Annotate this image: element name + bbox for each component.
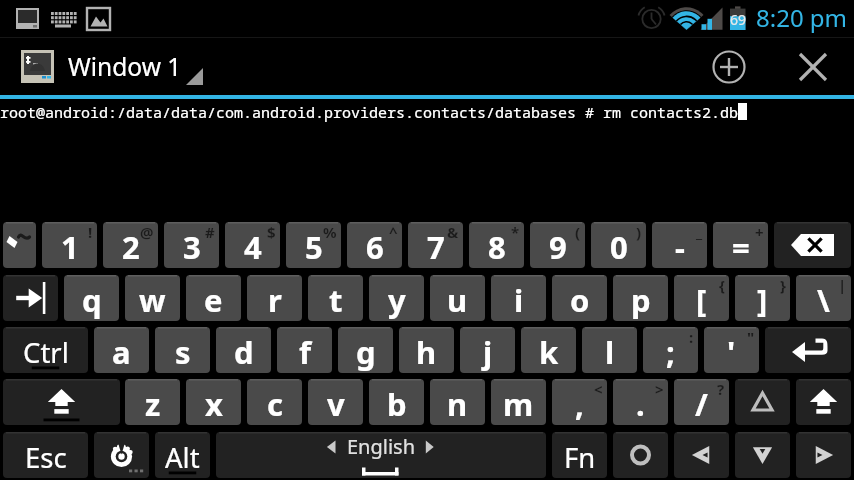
- button[interactable]: ]: [735, 275, 790, 321]
- staticText: c: [267, 383, 283, 425]
- staticText: l: [605, 331, 615, 373]
- staticText: 8:20 pm: [756, 1, 848, 34]
- button[interactable]: Tab: [3, 275, 58, 321]
- button[interactable]: y: [369, 275, 424, 321]
- button[interactable]: Esc: [3, 432, 88, 478]
- button[interactable]: Space: [216, 432, 546, 478]
- button[interactable]: r: [247, 275, 302, 321]
- button[interactable]: 3: [164, 222, 219, 268]
- button[interactable]: Control: [613, 432, 668, 478]
- staticText: >: [655, 379, 664, 399]
- button[interactable]: 7: [408, 222, 463, 268]
- staticText: f: [299, 331, 311, 373]
- button[interactable]: e: [186, 275, 241, 321]
- button[interactable]: Fn: [552, 432, 607, 478]
- button[interactable]: j: [460, 327, 515, 373]
- staticText: ;: [666, 331, 675, 373]
- staticText: _: [696, 222, 703, 242]
- staticText: 6: [366, 226, 384, 268]
- button[interactable]: k: [521, 327, 576, 373]
- button[interactable]: i: [491, 275, 546, 321]
- staticText: 1: [61, 226, 79, 268]
- button[interactable]: a: [94, 327, 149, 373]
- button[interactable]: Change keyboard: [94, 432, 149, 478]
- button[interactable]: f: [277, 327, 332, 373]
- button[interactable]: Alt: [155, 432, 210, 478]
- button[interactable]: .: [613, 379, 668, 425]
- button[interactable]: Right: [796, 432, 851, 478]
- button[interactable]: h: [399, 327, 454, 373]
- button[interactable]: Window 1: [0, 38, 203, 95]
- button[interactable]: Shift: [3, 379, 120, 425]
- staticText: m: [503, 383, 534, 425]
- button[interactable]: p: [613, 275, 668, 321]
- button[interactable]: n: [430, 379, 485, 425]
- button[interactable]: t: [308, 275, 363, 321]
- button[interactable]: g: [338, 327, 393, 373]
- button[interactable]: backtick: [3, 222, 36, 268]
- button[interactable]: z: [125, 379, 180, 425]
- button[interactable]: 4: [225, 222, 280, 268]
- staticText: English: [347, 433, 416, 460]
- button[interactable]: ,: [552, 379, 607, 425]
- staticText: r: [268, 279, 282, 321]
- button[interactable]: m: [491, 379, 546, 425]
- staticText: i: [514, 279, 524, 321]
- staticText: $: [267, 222, 276, 242]
- staticText: ^: [389, 222, 398, 242]
- button[interactable]: Up: [735, 379, 790, 425]
- staticText: b: [387, 383, 407, 425]
- staticText: 3: [183, 226, 201, 268]
- button[interactable]: b: [369, 379, 424, 425]
- button[interactable]: c: [247, 379, 302, 425]
- button[interactable]: 2: [103, 222, 158, 268]
- button[interactable]: Down: [735, 432, 790, 478]
- button[interactable]: Backspace: [774, 222, 851, 268]
- button[interactable]: [: [674, 275, 729, 321]
- button[interactable]: 9: [530, 222, 585, 268]
- button[interactable]: -: [652, 222, 707, 268]
- button[interactable]: Ctrl: [3, 327, 88, 373]
- staticText: e: [204, 279, 223, 321]
- button[interactable]: Left: [674, 432, 729, 478]
- button[interactable]: l: [582, 327, 637, 373]
- staticText: ?: [717, 379, 725, 399]
- button[interactable]: 0: [591, 222, 646, 268]
- staticText: -: [675, 226, 685, 268]
- staticText: 9: [549, 226, 567, 268]
- button[interactable]: 1: [42, 222, 97, 268]
- button[interactable]: s: [155, 327, 210, 373]
- staticText: Alt: [165, 439, 200, 476]
- staticText: :: [689, 327, 694, 347]
- button[interactable]: x: [186, 379, 241, 425]
- staticText: y: [388, 279, 406, 321]
- staticText: root@android:/data/data/com.android.prov…: [0, 102, 739, 122]
- button[interactable]: 5: [286, 222, 341, 268]
- staticText: s: [175, 331, 191, 373]
- button[interactable]: \: [796, 275, 851, 321]
- staticText: n: [447, 383, 468, 425]
- staticText: (: [575, 222, 581, 242]
- button[interactable]: u: [430, 275, 485, 321]
- button[interactable]: Enter: [765, 327, 851, 373]
- staticText: u: [447, 279, 468, 321]
- staticText: o: [570, 279, 590, 321]
- button[interactable]: Close window: [788, 38, 837, 95]
- button[interactable]: /: [674, 379, 729, 425]
- button[interactable]: d: [216, 327, 271, 373]
- button[interactable]: 6: [347, 222, 402, 268]
- button[interactable]: 8: [469, 222, 524, 268]
- button[interactable]: v: [308, 379, 363, 425]
- staticText: <: [594, 379, 603, 399]
- button[interactable]: q: [64, 275, 119, 321]
- button[interactable]: =: [713, 222, 768, 268]
- button[interactable]: o: [552, 275, 607, 321]
- staticText: }: [780, 275, 786, 295]
- button[interactable]: New window: [704, 38, 753, 95]
- staticText: g: [356, 331, 376, 373]
- button[interactable]: Shift: [796, 379, 851, 425]
- button[interactable]: ;: [643, 327, 698, 373]
- button[interactable]: ': [704, 327, 759, 373]
- button[interactable]: w: [125, 275, 180, 321]
- staticText: [: [696, 279, 707, 321]
